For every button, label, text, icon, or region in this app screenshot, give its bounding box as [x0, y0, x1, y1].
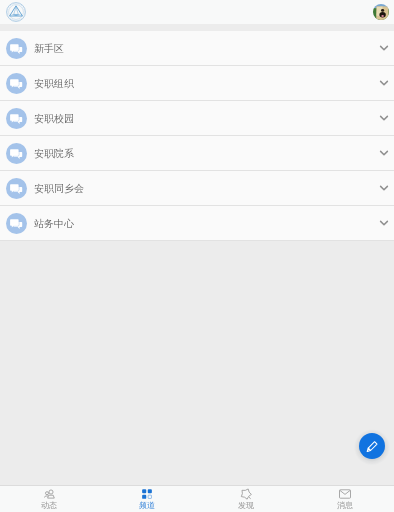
- staticText: 消息: [337, 500, 353, 510]
- button[interactable]: School logo: [6, 2, 26, 22]
- staticText: 站务中心: [34, 217, 74, 230]
- staticText: 安职同乡会: [34, 182, 84, 195]
- staticText: 安职院系: [34, 147, 74, 160]
- button[interactable]: 消息: [295, 486, 394, 512]
- staticText: 动态: [41, 500, 57, 510]
- staticText: 新手区: [34, 42, 64, 55]
- button[interactable]: 动态: [0, 486, 98, 512]
- button[interactable]: 安职院系: [0, 136, 394, 171]
- button[interactable]: 新手区: [0, 31, 394, 66]
- button[interactable]: 站务中心: [0, 206, 394, 241]
- staticText: 频道: [139, 500, 155, 510]
- staticText: 发现: [238, 500, 254, 510]
- button[interactable]: Compose post: [359, 433, 385, 459]
- button[interactable]: Profile: [373, 4, 389, 20]
- button[interactable]: 发现: [196, 486, 295, 512]
- staticText: 安职校园: [34, 112, 74, 125]
- button[interactable]: 安职同乡会: [0, 171, 394, 206]
- staticText: 安职组织: [34, 77, 74, 90]
- button[interactable]: 安职校园: [0, 101, 394, 136]
- button[interactable]: 频道: [98, 486, 196, 512]
- button[interactable]: 安职组织: [0, 66, 394, 101]
